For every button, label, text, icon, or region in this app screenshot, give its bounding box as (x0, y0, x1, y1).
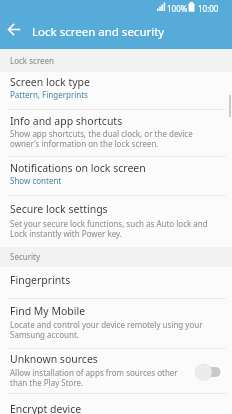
staticText: Info and app shortcuts (10, 114, 123, 128)
button[interactable]: Fingerprints (0, 267, 232, 298)
button[interactable]: Unknown sources (0, 349, 232, 393)
button[interactable]: Notifications on lock screen (0, 157, 232, 195)
staticText: Notifications on lock screen (10, 161, 146, 175)
staticText: Show content (10, 175, 62, 186)
staticText: Fingerprints (10, 273, 71, 287)
button[interactable]: Find My Mobile (0, 299, 232, 348)
staticText: Lock screen and security (32, 24, 165, 40)
staticText: Allow installation of apps from sources … (10, 367, 178, 388)
staticText: Lock screen (10, 55, 55, 66)
staticText: Encrypt device (10, 402, 82, 414)
staticText: Show app shortcuts, the dual clock, or t… (10, 128, 193, 149)
button[interactable]: Screen lock type (0, 72, 232, 109)
staticText: 100% (167, 3, 188, 14)
button[interactable] (2, 17, 28, 43)
button[interactable]: Encrypt device (0, 394, 232, 414)
staticText: Secure lock settings (10, 202, 108, 216)
staticText: Set your secure lock functions, such as … (10, 218, 208, 239)
staticText: Security (10, 251, 41, 262)
button[interactable]: Secure lock settings (0, 196, 232, 247)
staticText: 10:00 (198, 3, 219, 14)
staticText: Find My Mobile (10, 304, 86, 318)
staticText: Pattern, Fingerprints (10, 89, 88, 100)
staticText: Screen lock type (10, 75, 90, 89)
staticText: Locate and control your device remotely … (10, 319, 203, 340)
button[interactable]: Info and app shortcuts (0, 110, 232, 156)
staticText: Unknown sources (10, 352, 98, 366)
